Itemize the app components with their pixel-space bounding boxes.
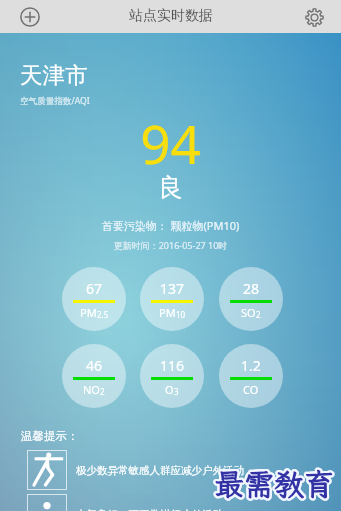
- staticText: 最需教育: [213, 465, 333, 505]
- staticText: 46: [86, 356, 103, 375]
- staticText: 最需教育: [212, 464, 332, 504]
- button[interactable]: 空气良好，可正常进行户外活动: [27, 494, 223, 511]
- button[interactable]: Settings: [299, 2, 329, 32]
- staticText: 最需教育: [213, 462, 333, 502]
- staticText: 28: [243, 279, 260, 298]
- staticText: CO: [243, 382, 259, 397]
- staticText: 最需教育: [213, 463, 333, 503]
- staticText: 最需教育: [215, 464, 335, 504]
- staticText: 最需教育: [215, 465, 335, 505]
- staticText: 最需教育: [215, 462, 335, 502]
- button[interactable]: 28: [219, 267, 283, 331]
- staticText: 2: [256, 309, 261, 320]
- button[interactable]: 67: [62, 267, 126, 331]
- staticText: PM: [80, 305, 97, 320]
- staticText: 最需教育: [212, 463, 332, 503]
- staticText: 2: [100, 386, 105, 397]
- staticText: 最需教育: [214, 463, 334, 503]
- staticText: 67: [86, 279, 103, 298]
- staticText: 最需教育: [216, 465, 336, 505]
- staticText: 更新时间：2016-05-27 10时: [0, 239, 341, 251]
- button[interactable]: 137: [140, 267, 204, 331]
- staticText: 94: [0, 107, 341, 179]
- staticText: O: [165, 382, 174, 397]
- staticText: 空气良好，可正常进行户外活动: [76, 508, 223, 511]
- button[interactable]: Add station: [15, 2, 45, 32]
- staticText: 最需教育: [213, 466, 333, 506]
- staticText: 最需教育: [214, 465, 334, 505]
- staticText: 最需教育: [214, 462, 334, 502]
- staticText: 最需教育: [216, 463, 336, 503]
- staticText: 116: [160, 356, 185, 375]
- staticText: 站点实时数据: [129, 7, 213, 25]
- staticText: 温馨提示：: [21, 429, 79, 443]
- staticText: 3: [174, 386, 179, 397]
- button[interactable]: 1.2: [219, 344, 283, 408]
- staticText: 最需教育: [215, 463, 335, 503]
- button[interactable]: 46: [62, 344, 126, 408]
- staticText: 极少数异常敏感人群应减少户外活动: [76, 464, 244, 477]
- staticText: 空气质量指数/AQI: [20, 95, 90, 107]
- staticText: 最需教育: [213, 464, 333, 504]
- staticText: 137: [160, 279, 185, 298]
- staticText: SO: [241, 305, 256, 320]
- staticText: 最需教育: [214, 464, 334, 504]
- staticText: 2.5: [97, 309, 109, 320]
- staticText: 最需教育: [214, 466, 334, 506]
- staticText: 最需教育: [215, 466, 335, 506]
- button[interactable]: 极少数异常敏感人群应减少户外活动: [27, 450, 244, 490]
- staticText: 10: [176, 309, 186, 320]
- button[interactable]: 116: [140, 344, 204, 408]
- staticText: 最需教育: [212, 465, 332, 505]
- staticText: PM: [159, 305, 176, 320]
- staticText: 1.2: [241, 356, 261, 375]
- staticText: 首要污染物： 颗粒物(PM10): [0, 218, 341, 233]
- staticText: 良: [0, 172, 341, 203]
- staticText: NO: [83, 382, 100, 397]
- staticText: 天津市: [20, 61, 88, 89]
- staticText: 最需教育: [216, 464, 336, 504]
